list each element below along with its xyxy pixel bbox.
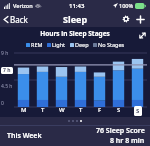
staticText: REM (31, 41, 43, 48)
button[interactable]: This Week (5, 129, 44, 143)
button[interactable]: S (128, 106, 147, 116)
button[interactable]: Expand chart (136, 29, 148, 41)
staticText: T (79, 106, 83, 114)
button[interactable]: T (33, 106, 52, 114)
staticText: Hours in Sleep Stages (0, 29, 150, 38)
button[interactable]: Back (0, 11, 32, 27)
button[interactable]: S (109, 106, 128, 114)
staticText: S (136, 107, 140, 115)
staticText: F (98, 106, 102, 114)
staticText: Sleep (63, 13, 88, 25)
staticText: Light (52, 41, 66, 48)
button[interactable]: W (52, 106, 71, 114)
button[interactable]: Add (133, 12, 147, 26)
staticText: Deep (75, 41, 89, 48)
staticText: 7 h (3, 67, 11, 74)
staticText: 11:43 (69, 2, 85, 10)
button[interactable]: F (90, 106, 109, 114)
staticText: 9 h (1, 50, 9, 57)
button[interactable]: T (71, 106, 90, 114)
staticText: S (117, 106, 121, 114)
staticText: 4.5 h (1, 83, 13, 90)
staticText: Verizon (13, 2, 33, 9)
staticText: M (21, 106, 27, 114)
staticText: W (59, 106, 65, 114)
staticText: T (41, 106, 45, 114)
staticText: Back (10, 14, 28, 25)
button[interactable]: M (14, 106, 33, 114)
staticText: This Week (7, 131, 42, 141)
staticText: 100% (119, 2, 134, 9)
button[interactable]: Settings (119, 12, 133, 26)
staticText: 8 hr 8 min (110, 136, 145, 146)
staticText: No Stages (98, 41, 125, 48)
staticText: 76 Sleep Score (96, 126, 145, 136)
staticText: 0 (1, 100, 4, 107)
